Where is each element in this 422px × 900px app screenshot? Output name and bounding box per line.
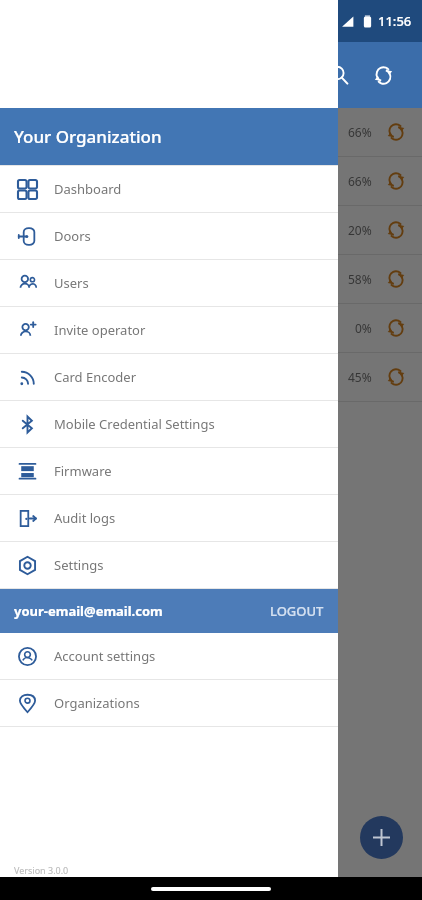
button[interactable]: Organizations bbox=[0, 680, 338, 726]
staticText: 66% bbox=[348, 124, 372, 140]
button[interactable]: Users bbox=[0, 260, 338, 306]
staticText: Card Encoder bbox=[54, 368, 137, 386]
staticText: 20% bbox=[348, 222, 372, 238]
staticText: Audit logs bbox=[54, 509, 116, 527]
staticText: Invite operator bbox=[54, 321, 146, 339]
staticText: LOGOUT bbox=[270, 602, 324, 620]
button[interactable]: Firmware bbox=[0, 448, 338, 494]
button[interactable]: Dashboard bbox=[0, 166, 338, 212]
staticText: Your Organization bbox=[14, 125, 162, 148]
staticText: Firmware bbox=[54, 462, 112, 480]
button[interactable]: 45% bbox=[0, 353, 422, 401]
staticText: Doors bbox=[54, 227, 91, 245]
button[interactable]: Mobile Credential Settings bbox=[0, 401, 338, 447]
staticText: 66% bbox=[348, 173, 372, 189]
button[interactable]: Sync bbox=[366, 58, 400, 92]
button[interactable]: Audit logs bbox=[0, 495, 338, 541]
button[interactable]: 66% bbox=[0, 108, 422, 156]
button[interactable]: Card Encoder bbox=[0, 354, 338, 400]
button[interactable]: Add bbox=[360, 816, 403, 859]
button[interactable]: 20% bbox=[0, 206, 422, 254]
button[interactable]: Doors bbox=[0, 213, 338, 259]
staticText: Account settings bbox=[54, 647, 156, 665]
button[interactable]: Settings bbox=[0, 542, 338, 588]
staticText: your-email@email.com bbox=[14, 602, 163, 620]
staticText: Dashboard bbox=[54, 180, 122, 198]
button[interactable]: Search bbox=[322, 58, 356, 92]
staticText: Mobile Credential Settings bbox=[54, 415, 215, 433]
button[interactable]: Account settings bbox=[0, 633, 338, 679]
button[interactable]: 66% bbox=[0, 157, 422, 205]
staticText: Settings bbox=[54, 556, 104, 574]
button[interactable]: 58% bbox=[0, 255, 422, 303]
button[interactable]: 0% bbox=[0, 304, 422, 352]
staticText: 58% bbox=[348, 271, 372, 287]
staticText: Organizations bbox=[54, 694, 140, 712]
staticText: 45% bbox=[348, 369, 372, 385]
button[interactable]: Your Organization bbox=[0, 108, 338, 165]
staticText: Version 3.0.0 bbox=[14, 864, 69, 876]
button[interactable]: Invite operator bbox=[0, 307, 338, 353]
staticText: 0% bbox=[355, 320, 372, 336]
staticText: 11:56 bbox=[378, 12, 412, 30]
staticText: Users bbox=[54, 274, 89, 292]
button[interactable]: your-email@email.com bbox=[0, 589, 338, 633]
